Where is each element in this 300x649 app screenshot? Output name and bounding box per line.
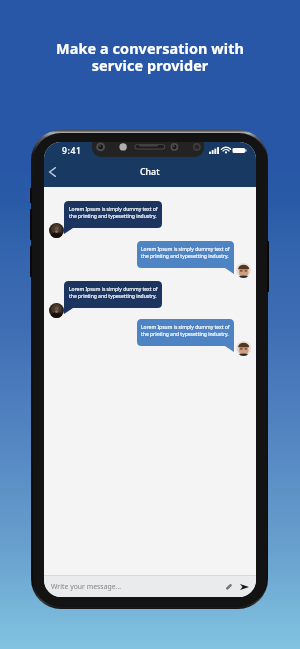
staticText: Make a conversation with service provide… bbox=[0, 39, 300, 76]
staticText: Lorem Ipsum is simply dummy text of the … bbox=[69, 286, 158, 300]
staticText: Lorem Ipsum is simply dummy text of the … bbox=[141, 324, 230, 338]
staticText: Chat bbox=[140, 166, 160, 178]
staticText: Lorem Ipsum is simply dummy text of the … bbox=[141, 246, 230, 260]
button[interactable]: Attach file bbox=[222, 580, 236, 594]
staticText: 9:41 bbox=[62, 145, 82, 157]
staticText: Write your message... bbox=[51, 582, 122, 591]
staticText: Lorem Ipsum is simply dummy text of the … bbox=[69, 206, 158, 220]
button[interactable]: Back bbox=[44, 162, 62, 182]
button[interactable]: Send bbox=[237, 580, 251, 594]
